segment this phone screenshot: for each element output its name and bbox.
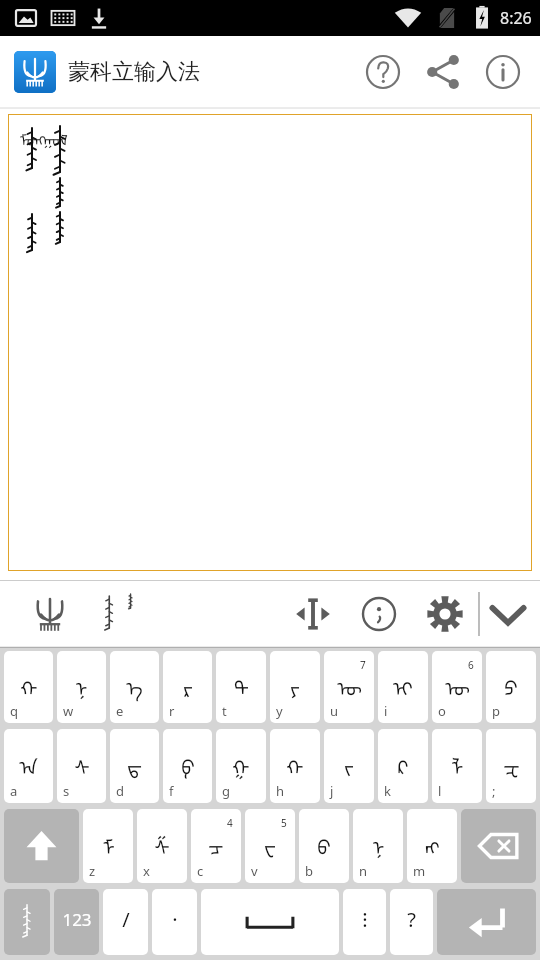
staticText: e	[116, 702, 124, 720]
staticText: r	[169, 702, 175, 720]
staticText: ᠲ	[234, 667, 249, 702]
staticText: ᠽ	[503, 746, 520, 781]
staticText: ᠯ	[451, 746, 464, 781]
staticText: g	[222, 782, 230, 800]
staticText: u	[330, 702, 339, 720]
staticText: t	[222, 702, 227, 720]
button[interactable]: ᠨ	[57, 651, 106, 723]
staticText: ᠰ	[74, 746, 90, 781]
button[interactable]: ᠽ	[486, 729, 536, 803]
staticText: ᠥ	[445, 667, 470, 702]
button[interactable]: Move cursor	[287, 588, 339, 640]
staticText: n	[359, 862, 368, 880]
staticText: f	[169, 782, 174, 800]
button[interactable]: ᠩ	[407, 809, 457, 883]
button[interactable]: ᠮᠣᠩᠭᠣᠯ	[8, 114, 532, 571]
button[interactable]: ?	[390, 889, 433, 955]
button[interactable]: ᠱ	[137, 809, 187, 883]
staticText: w	[63, 702, 74, 720]
button[interactable]: Share	[420, 49, 466, 95]
staticText: ᠭ	[232, 746, 250, 781]
staticText: ᠹ	[181, 746, 195, 781]
staticText: ;	[492, 782, 496, 800]
button[interactable]: ᠳ	[110, 729, 159, 803]
staticText: y	[276, 702, 283, 720]
button[interactable]: lang	[4, 889, 50, 955]
staticText: c	[197, 862, 204, 880]
button[interactable]: ᠬ	[270, 729, 320, 803]
button[interactable]: ᠶ	[270, 651, 320, 723]
button[interactable]: ᠮ	[83, 809, 133, 883]
button[interactable]: ᠨ	[353, 809, 403, 883]
staticText: m	[413, 862, 426, 880]
button[interactable]: ᠥ	[432, 651, 482, 723]
button[interactable]: ᠸ	[245, 809, 295, 883]
staticText: ᠫ	[504, 667, 518, 702]
button[interactable]: ᠭ	[216, 729, 266, 803]
staticText: ᠵ	[344, 746, 354, 781]
button[interactable]: shift	[4, 809, 79, 883]
button[interactable]: ᠠ	[4, 729, 53, 803]
button[interactable]: enter	[437, 889, 536, 955]
staticText: ᠴ	[208, 826, 224, 861]
button[interactable]: Candidate word	[88, 586, 144, 642]
button[interactable]: ᠯ	[432, 729, 482, 803]
button[interactable]: ᠪ	[299, 809, 349, 883]
button[interactable]	[14, 51, 56, 93]
staticText: ᠶ	[290, 667, 300, 702]
button[interactable]: ᠲ	[216, 651, 266, 723]
button[interactable]: Info	[480, 49, 526, 95]
staticText: ?	[407, 906, 416, 933]
staticText: ᠠ	[19, 746, 38, 781]
button[interactable]: ᠷ	[163, 651, 212, 723]
button[interactable]: Hide keyboard	[480, 586, 536, 642]
button[interactable]: ᠰ	[57, 729, 106, 803]
button[interactable]: 123	[54, 889, 99, 955]
button[interactable]: space	[201, 889, 339, 955]
staticText: d	[116, 782, 124, 800]
staticText: z	[89, 862, 96, 880]
staticText: h	[276, 782, 285, 800]
button[interactable]: Settings	[419, 588, 471, 640]
staticText: j	[330, 782, 334, 800]
staticText: ᠦ	[337, 667, 362, 702]
button[interactable]: ᠺ	[378, 729, 428, 803]
staticText: 4	[227, 816, 233, 830]
button[interactable]: Input method logo	[26, 590, 74, 638]
button[interactable]: ᠵ	[324, 729, 374, 803]
staticText: /	[122, 906, 130, 933]
staticText: o	[438, 702, 446, 720]
button[interactable]: ᠬ	[4, 651, 53, 723]
button[interactable]: ᠫ	[486, 651, 536, 723]
staticText: i	[384, 702, 388, 720]
button[interactable]: ᠡ	[110, 651, 159, 723]
staticText: ᠨ	[75, 667, 88, 702]
staticText: 蒙科立输入法	[68, 58, 200, 86]
button[interactable]: ᠦ	[324, 651, 374, 723]
staticText: 6	[468, 658, 474, 672]
staticText: p	[492, 702, 500, 720]
staticText: ᠡ	[126, 667, 143, 702]
staticText: ᠢ	[393, 667, 413, 702]
staticText: ᠮ	[102, 826, 115, 861]
staticText: ᠩ	[425, 826, 440, 861]
staticText: ᠳ	[127, 746, 142, 781]
staticText: ᠬ	[20, 667, 38, 702]
button[interactable]: Help	[360, 49, 406, 95]
button[interactable]: Punctuation	[353, 588, 405, 640]
staticText: 8:26	[500, 7, 532, 29]
staticText: x	[143, 862, 150, 880]
staticText: ᠪ	[317, 826, 331, 861]
staticText: q	[10, 702, 18, 720]
staticText: s	[63, 782, 70, 800]
button[interactable]: ᠢ	[378, 651, 428, 723]
button[interactable]: ᠴ	[191, 809, 241, 883]
button[interactable]: /	[103, 889, 148, 955]
staticText: 7	[360, 658, 366, 672]
button[interactable]: ᠹ	[163, 729, 212, 803]
button[interactable]: ·	[152, 889, 197, 955]
button[interactable]: back	[461, 809, 536, 883]
staticText: l	[438, 782, 442, 800]
staticText: v	[251, 862, 258, 880]
button[interactable]: ⁝	[343, 889, 386, 955]
